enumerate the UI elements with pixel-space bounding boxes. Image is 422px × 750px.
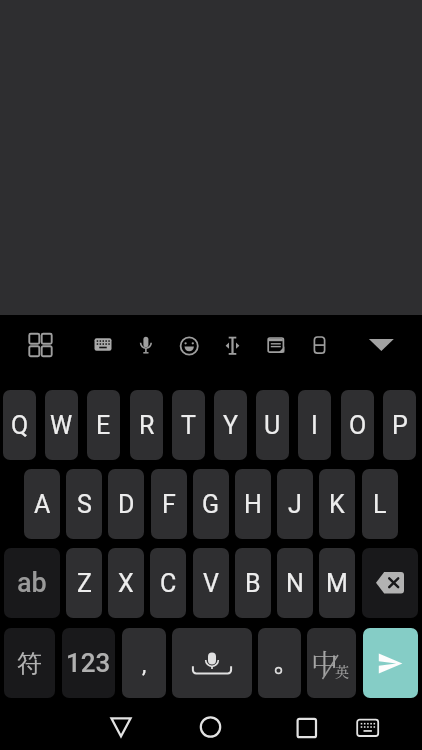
button[interactable] (362, 548, 418, 618)
button[interactable]: H (235, 469, 271, 539)
button[interactable] (363, 628, 418, 698)
staticText: D (118, 490, 135, 519)
button[interactable]: D (108, 469, 144, 539)
staticText: J (288, 490, 302, 519)
button[interactable]: G (193, 469, 229, 539)
button[interactable]: O (341, 390, 374, 460)
staticText: V (203, 569, 219, 598)
button[interactable] (258, 628, 301, 698)
staticText: Y (223, 411, 239, 440)
button[interactable]: B (235, 548, 271, 618)
staticText: F (162, 490, 176, 519)
button[interactable]: C (150, 548, 186, 618)
staticText: E (96, 411, 111, 440)
staticText: X (118, 569, 134, 598)
button[interactable]: 符 (4, 628, 55, 698)
staticText: U (264, 411, 281, 440)
staticText: M (326, 569, 348, 598)
button[interactable]: 123 (62, 628, 115, 698)
button[interactable]: X (108, 548, 144, 618)
button[interactable]: K (319, 469, 355, 539)
button[interactable]: 中 (307, 628, 356, 698)
button[interactable]: W (45, 390, 78, 460)
button[interactable]: E (87, 390, 120, 460)
staticText: 123 (66, 648, 111, 678)
button[interactable]: , (122, 628, 166, 698)
button[interactable]: Q (3, 390, 36, 460)
staticText: 符 (17, 648, 42, 679)
staticText: I (311, 411, 318, 440)
button[interactable]: J (277, 469, 313, 539)
staticText: H (244, 490, 262, 519)
button[interactable]: ab (4, 548, 60, 618)
button[interactable]: Z (66, 548, 102, 618)
staticText: S (77, 490, 92, 519)
staticText: ab (17, 567, 47, 599)
button[interactable]: V (193, 548, 229, 618)
button[interactable]: A (24, 469, 60, 539)
button[interactable]: S (66, 469, 102, 539)
staticText: A (34, 490, 51, 519)
staticText: T (181, 411, 196, 440)
staticText: G (202, 490, 220, 519)
button[interactable]: N (277, 548, 313, 618)
staticText: W (50, 411, 73, 440)
button[interactable]: P (383, 390, 416, 460)
staticText: Q (11, 411, 29, 440)
staticText: R (139, 411, 155, 440)
staticText: Z (77, 569, 92, 598)
button[interactable]: M (319, 548, 355, 618)
staticText: P (392, 411, 408, 440)
button[interactable]: I (298, 390, 331, 460)
staticText: K (329, 490, 345, 519)
staticText: L (373, 490, 387, 519)
staticText: O (349, 411, 367, 440)
staticText: C (160, 569, 177, 598)
staticText: N (286, 569, 304, 598)
staticText: 英 (335, 661, 349, 681)
staticText: 中 (311, 643, 338, 682)
button[interactable]: T (172, 390, 205, 460)
button[interactable]: L (362, 469, 398, 539)
button[interactable]: Y (214, 390, 247, 460)
button[interactable]: F (151, 469, 187, 539)
staticText: B (245, 569, 261, 598)
button[interactable]: R (130, 390, 163, 460)
staticText: , (142, 652, 147, 678)
button[interactable] (172, 628, 252, 698)
button[interactable]: U (256, 390, 289, 460)
